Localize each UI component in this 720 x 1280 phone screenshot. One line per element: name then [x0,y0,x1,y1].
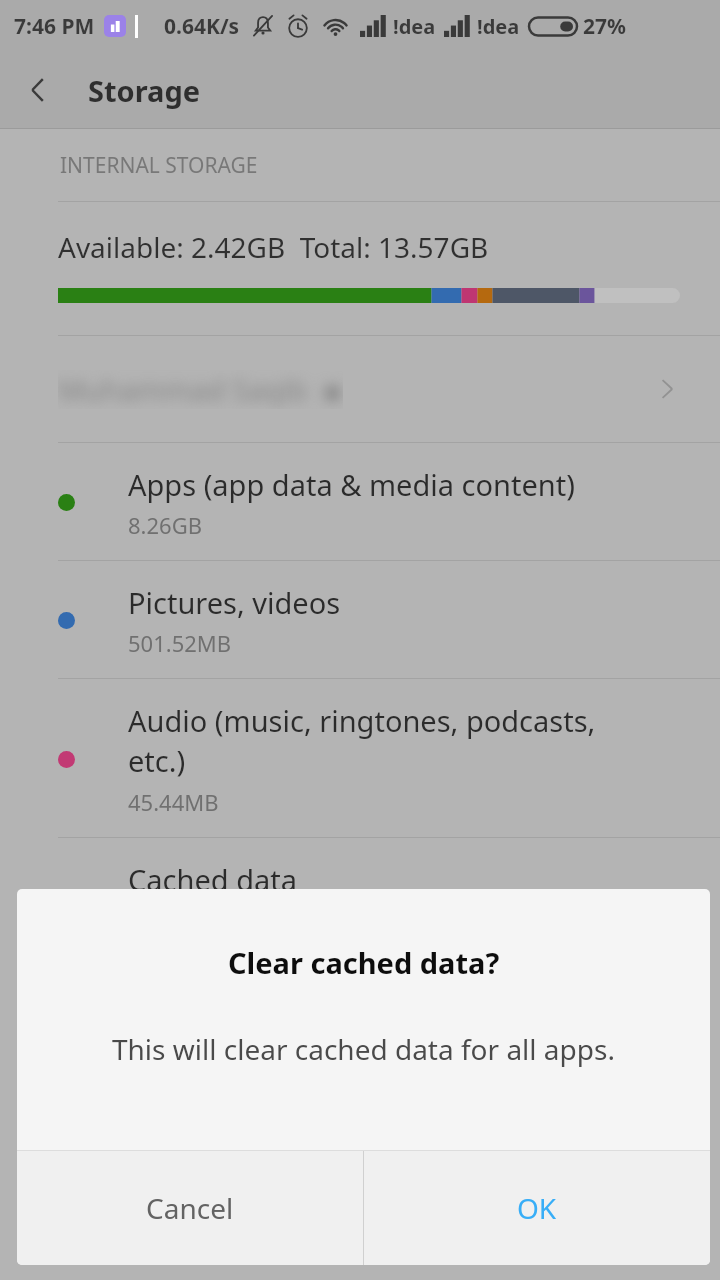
button[interactable]: Muhammad Saqib ▪ [0,336,720,442]
staticText: 7:46 PM [14,12,95,41]
staticText: Pictures, videos [128,583,341,622]
staticText: 0.64K/s [164,12,240,41]
staticText: 501.52MB [128,628,232,658]
staticText: Muhammad Saqib ▪ [58,370,343,409]
button[interactable]: Back [0,52,76,128]
staticText: Clear cached data? [228,943,500,982]
staticText: Available: 2.42GB Total: 13.57GB [58,228,489,266]
button[interactable]: Cached data [0,838,720,955]
staticText: Storage [88,71,201,110]
staticText: !dea [477,13,520,40]
staticText: INTERNAL STORAGE [60,151,258,180]
button[interactable]: Apps (app data & media content) [0,443,720,560]
staticText: Cached data [128,860,298,899]
staticText: 27% [583,12,626,41]
staticText: Audio (music, ringtones, podcasts, etc.) [128,701,596,781]
staticText: Apps (app data & media content) [128,465,575,504]
staticText: This will clear cached data for all apps… [112,1030,615,1068]
staticText: OK [517,1189,557,1227]
staticText: 45.44MB [128,787,219,817]
button[interactable]: Pictures, videos [0,561,720,678]
staticText: !dea [393,13,436,40]
staticText: Cancel [146,1189,234,1227]
button[interactable]: Cancel [17,1151,363,1265]
button[interactable]: Audio (music, ringtones, podcasts, etc.) [0,679,720,837]
staticText: 8.26GB [128,510,202,540]
button[interactable]: OK [364,1151,710,1265]
